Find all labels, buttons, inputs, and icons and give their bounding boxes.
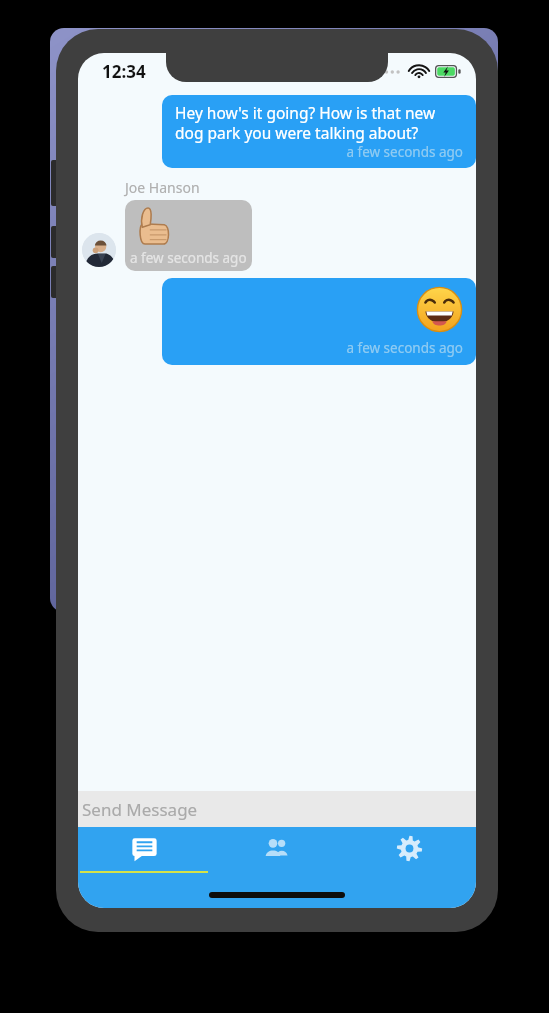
staticText: 12:34 bbox=[102, 60, 146, 83]
button[interactable]: Hey how's it going? How is that new dog … bbox=[162, 95, 476, 168]
button[interactable]: Send Message bbox=[78, 791, 476, 827]
staticText: Hey how's it going? How is that new dog … bbox=[175, 102, 463, 143]
button[interactable]: Settings bbox=[343, 827, 476, 873]
button[interactable]: a few seconds ago bbox=[162, 278, 476, 365]
button[interactable]: People bbox=[210, 827, 343, 873]
button[interactable]: Chats bbox=[78, 827, 210, 873]
staticText: Joe Hanson bbox=[125, 178, 200, 197]
button[interactable]: Joe Hanson avatar bbox=[82, 233, 116, 267]
staticText: Send Message bbox=[82, 798, 198, 821]
staticText: a few seconds ago bbox=[175, 143, 463, 161]
staticText: a few seconds ago bbox=[175, 339, 463, 357]
button[interactable]: a few seconds ago bbox=[125, 200, 252, 271]
staticText: a few seconds ago bbox=[130, 249, 247, 267]
